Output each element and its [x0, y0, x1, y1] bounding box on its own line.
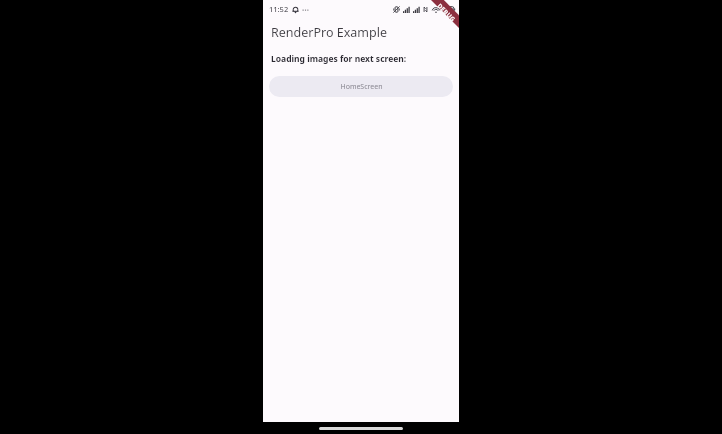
other: Home gesture handle [319, 427, 403, 430]
staticText: DEBUG [435, 2, 457, 24]
staticText: Loading images for next screen: [271, 53, 407, 65]
staticText: 11:52 [269, 4, 289, 14]
button[interactable]: HomeScreen [269, 76, 453, 97]
staticText: HomeScreen [340, 82, 383, 92]
staticText: RenderPro Example [271, 24, 387, 41]
